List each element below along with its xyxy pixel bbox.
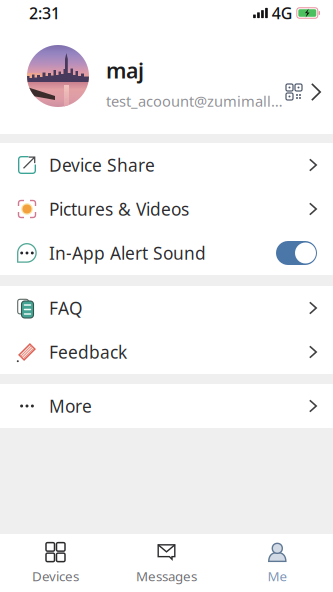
button[interactable]: Me	[222, 534, 333, 592]
staticText: In-App Alert Sound	[49, 241, 206, 264]
button[interactable]: Feedback	[0, 330, 333, 374]
staticText: Me	[267, 567, 287, 585]
button[interactable]: maj	[0, 26, 333, 134]
staticText: Devices	[32, 567, 79, 585]
staticText: Pictures & Videos	[49, 197, 189, 220]
staticText: 2:31	[29, 2, 60, 24]
button[interactable]: FAQ	[0, 286, 333, 330]
staticText: Feedback	[49, 340, 127, 363]
button[interactable]: Devices	[0, 534, 111, 592]
button[interactable]: Pictures & Videos	[0, 187, 333, 231]
button[interactable]: More	[0, 384, 333, 428]
staticText: 4G	[272, 2, 293, 24]
staticText: Device Share	[49, 153, 155, 176]
button[interactable]: Messages	[111, 534, 222, 592]
staticText: test_acoount@zumimall.c...	[106, 91, 284, 111]
staticText: FAQ	[49, 296, 83, 319]
staticText: maj	[106, 56, 144, 84]
button[interactable]: In-App Alert Sound	[0, 231, 333, 275]
staticText: Messages	[136, 567, 197, 585]
button[interactable]: Device Share	[0, 143, 333, 187]
staticText: More	[49, 394, 92, 417]
